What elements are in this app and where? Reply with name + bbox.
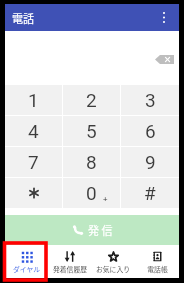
button[interactable]: More options [153, 4, 175, 31]
button[interactable]: Backspace [155, 55, 174, 64]
staticText: 3 [145, 89, 156, 111]
staticText: 0 [86, 182, 97, 204]
button[interactable]: 2 [63, 85, 120, 115]
button[interactable]: 9 [121, 147, 179, 177]
button[interactable]: 8 [63, 147, 120, 177]
staticText: 8 [86, 151, 97, 173]
staticText: 7 [28, 151, 39, 173]
button[interactable]: 7 [5, 147, 62, 177]
staticText: 発着信履歴 [53, 264, 87, 274]
button[interactable]: # [121, 178, 179, 208]
staticText: ダイヤル [13, 264, 40, 274]
staticText: + [103, 195, 108, 204]
button[interactable]: お気に入り [91, 245, 135, 278]
staticText: 電話帳 [147, 264, 168, 274]
button[interactable]: 4 [5, 116, 62, 146]
button[interactable]: 0 [63, 178, 120, 208]
staticText: 1 [28, 89, 39, 111]
staticText: 電話 [12, 10, 34, 26]
button[interactable]: 発着信履歴 [48, 245, 91, 278]
staticText: 発 信 [88, 222, 113, 238]
button[interactable] [5, 178, 62, 208]
button[interactable]: 6 [121, 116, 179, 146]
staticText: 4 [28, 120, 39, 142]
button[interactable]: 5 [63, 116, 120, 146]
staticText: 9 [145, 151, 156, 173]
button[interactable]: 1 [5, 85, 62, 115]
staticText: # [144, 182, 156, 204]
button[interactable]: 3 [121, 85, 179, 115]
staticText: 5 [86, 120, 97, 142]
staticText: お気に入り [96, 264, 130, 274]
staticText: 6 [145, 120, 156, 142]
button[interactable]: 発 信 [5, 215, 179, 245]
staticText: 2 [86, 89, 97, 111]
button[interactable]: ダイヤル [5, 245, 48, 278]
button[interactable]: 電話帳 [135, 245, 179, 278]
